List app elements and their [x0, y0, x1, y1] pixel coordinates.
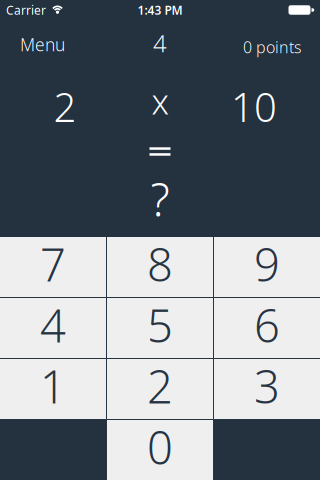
- button[interactable]: Menu: [0, 33, 65, 56]
- button[interactable]: 3: [214, 359, 320, 419]
- button[interactable]: 0: [107, 420, 213, 480]
- staticText: 2: [147, 356, 173, 416]
- staticText: 1:43 PM: [137, 2, 182, 18]
- button[interactable]: 7: [0, 237, 106, 297]
- staticText: 4: [40, 295, 66, 355]
- staticText: 3: [254, 356, 280, 416]
- staticText: 4: [153, 27, 167, 59]
- button[interactable]: 8: [107, 237, 213, 297]
- button[interactable]: 6: [214, 298, 320, 358]
- button[interactable]: 1: [0, 359, 106, 419]
- button[interactable]: 4: [0, 298, 106, 358]
- button[interactable]: 9: [214, 237, 320, 297]
- staticText: 5: [147, 295, 173, 355]
- staticText: 1: [40, 356, 66, 416]
- staticText: 6: [254, 295, 280, 355]
- staticText: Carrier: [6, 2, 46, 18]
- staticText: 9: [254, 234, 280, 294]
- staticText: 7: [40, 234, 66, 294]
- staticText: Menu: [20, 33, 65, 56]
- staticText: x: [151, 78, 168, 124]
- button[interactable]: 2: [107, 359, 213, 419]
- staticText: ?: [150, 169, 169, 229]
- staticText: 0 points: [243, 36, 302, 58]
- staticText: 0: [147, 417, 173, 477]
- button[interactable]: 5: [107, 298, 213, 358]
- staticText: 10: [231, 80, 277, 133]
- staticText: 2: [53, 80, 76, 133]
- staticText: 8: [147, 234, 173, 294]
